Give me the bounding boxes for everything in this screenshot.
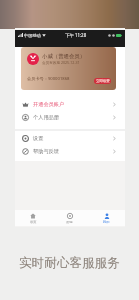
staticText: 我的 <box>103 220 110 224</box>
button[interactable]: 发现 <box>51 210 88 226</box>
staticText: 开通会员账户 <box>33 101 65 108</box>
staticText: 会员有效期 2025-12-31 <box>42 60 80 65</box>
button[interactable]: 首页 <box>15 210 51 226</box>
staticText: 首页 <box>30 220 37 224</box>
staticText: 实时耐心客服服务 <box>19 255 120 271</box>
staticText: 个人用品册 <box>33 114 59 121</box>
button[interactable]: 个人用品册 <box>15 111 125 124</box>
staticText: 发现 <box>66 220 73 224</box>
staticText: 立即续费 <box>96 79 110 83</box>
button[interactable]: 设置 <box>15 132 125 145</box>
button[interactable]: 开通会员账户 <box>15 98 125 111</box>
staticText: 设置 <box>33 135 44 142</box>
button[interactable]: 我的 <box>88 210 125 226</box>
staticText: 小威（普通会员） <box>42 53 86 60</box>
button[interactable]: 帮助与反馈 <box>15 145 125 158</box>
button[interactable]: 立即续费 <box>94 78 111 84</box>
staticText: 中国移动 <box>24 33 41 38</box>
button[interactable]: 小威（普通会员） <box>21 47 116 90</box>
staticText: 下午 11:28 <box>65 32 87 38</box>
staticText: 帮助与反馈 <box>33 148 59 155</box>
staticText: 会员卡号：900001868 <box>27 76 70 82</box>
